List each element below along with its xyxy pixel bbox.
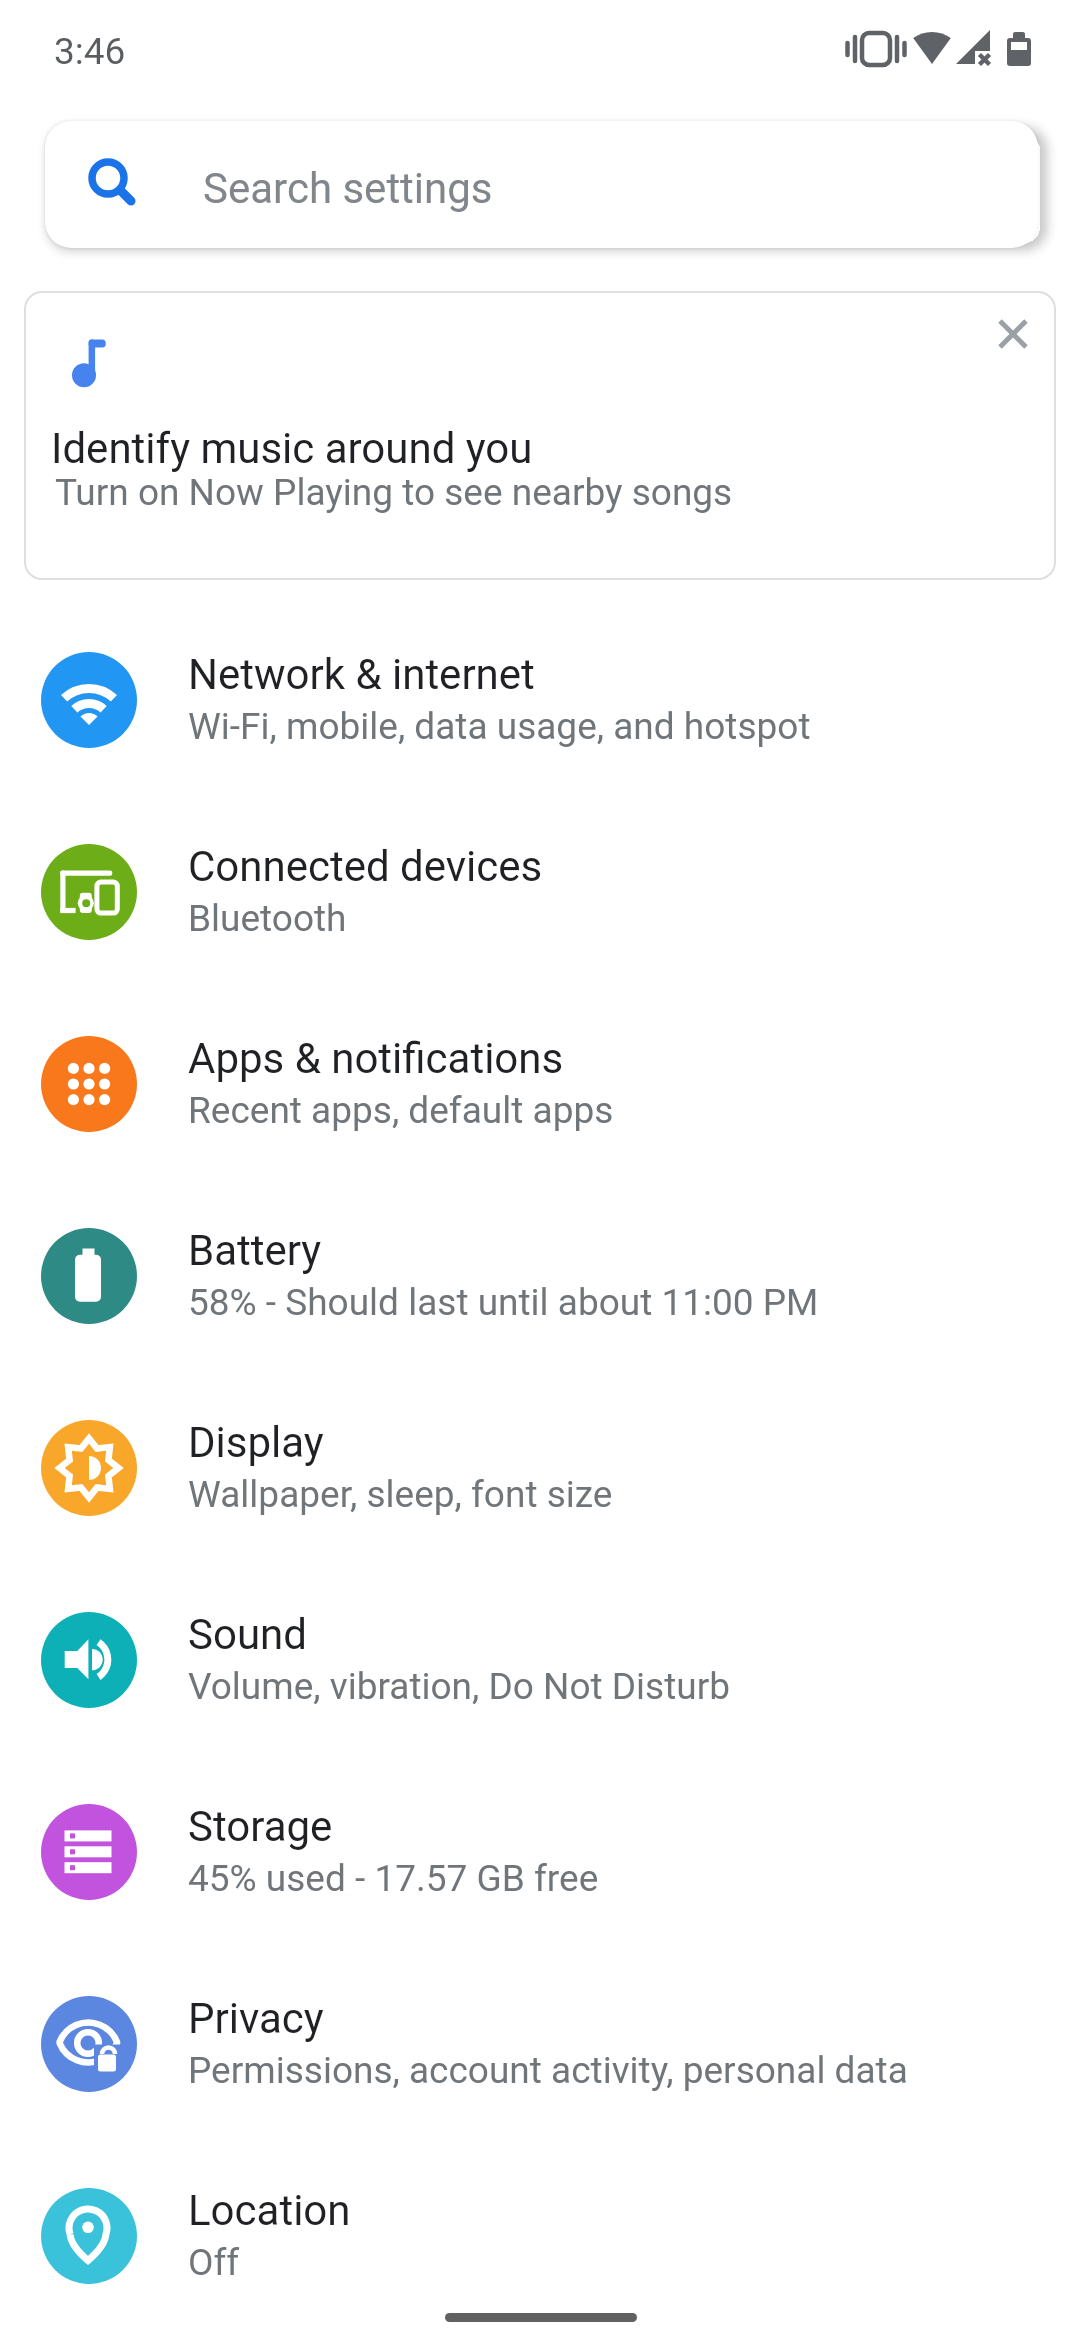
button[interactable] (983, 304, 1043, 364)
staticText: Apps & notifications (188, 1034, 564, 1083)
button[interactable]: Connected devices (0, 796, 1080, 988)
staticText: Connected devices (188, 842, 543, 891)
staticText: Display (188, 1418, 324, 1467)
staticText: 58% - Should last until about 11:00 PM (188, 1281, 819, 1324)
staticText: Permissions, account activity, personal … (188, 2049, 908, 2092)
staticText: Storage (188, 1802, 333, 1851)
staticText: Turn on Now Playing to see nearby songs (55, 471, 733, 514)
button[interactable]: Sound (0, 1564, 1080, 1756)
staticText: Privacy (188, 1994, 324, 2043)
staticText: Bluetooth (188, 897, 347, 940)
button[interactable]: Apps & notifications (0, 988, 1080, 1180)
staticText: Location (188, 2186, 351, 2235)
staticText: 3:46 (54, 30, 126, 73)
staticText: Sound (188, 1610, 307, 1659)
button[interactable]: Display (0, 1372, 1080, 1564)
staticText: Wi-Fi, mobile, data usage, and hotspot (188, 705, 811, 748)
button[interactable]: Network & internet (0, 604, 1080, 796)
staticText: Identify music around you (51, 424, 533, 473)
button[interactable]: Storage (0, 1756, 1080, 1948)
staticText: Battery (188, 1226, 322, 1275)
staticText: Search settings (203, 164, 493, 213)
staticText: Volume, vibration, Do Not Disturb (188, 1665, 731, 1708)
staticText: Off (188, 2241, 240, 2284)
staticText: Network & internet (188, 650, 535, 699)
button[interactable]: Privacy (0, 1948, 1080, 2140)
staticText: 45% used - 17.57 GB free (188, 1857, 599, 1900)
staticText: Recent apps, default apps (188, 1089, 614, 1132)
button[interactable]: Battery (0, 1180, 1080, 1372)
button[interactable]: Location (0, 2140, 1080, 2332)
button[interactable]: Search settings (45, 121, 1038, 248)
staticText: Wallpaper, sleep, font size (188, 1473, 613, 1516)
